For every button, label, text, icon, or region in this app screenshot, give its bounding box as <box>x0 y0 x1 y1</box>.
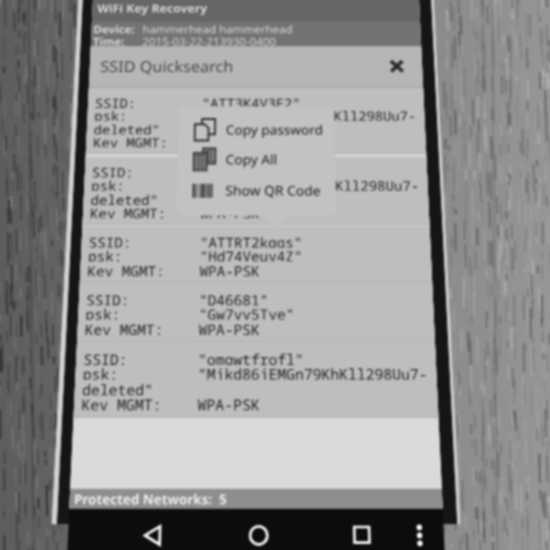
button[interactable]: SSID: <box>73 342 438 418</box>
staticText: deleted" <box>93 121 161 135</box>
staticText: WPA-PSK <box>197 394 260 410</box>
button[interactable]: WiFi Key Recovery <box>92 0 420 22</box>
staticText: WiFi Key Recovery <box>97 0 208 16</box>
staticText: "Mjkd86jEMGn79KhKll298Uu7- <box>201 176 420 191</box>
staticText: "ATTRT2kqgs" <box>200 233 303 248</box>
staticText: "D46681" <box>199 290 269 305</box>
button[interactable]: Copy password <box>178 114 335 145</box>
staticText: SSID Quicksearch <box>100 56 234 76</box>
button[interactable]: Home <box>232 509 284 550</box>
staticText: deleted" <box>90 191 159 205</box>
button[interactable]: SSID: <box>77 283 435 342</box>
staticText: Key MGMT: <box>93 134 201 147</box>
staticText: "ATT3K4V3F2" <box>202 94 301 108</box>
button[interactable]: Recent apps <box>335 509 389 550</box>
button[interactable]: SSID Quicksearch <box>89 46 377 86</box>
staticText: "Gw7yy5Tye" <box>199 304 295 320</box>
button[interactable]: SSID: <box>86 88 426 154</box>
staticText: psk: <box>91 176 201 191</box>
button[interactable]: SSID: <box>82 157 429 225</box>
button[interactable]: Show QR Code <box>177 175 336 206</box>
staticText: Key MGMT: <box>87 261 200 276</box>
staticText: SSID: <box>95 94 202 108</box>
button[interactable]: SSID: <box>80 226 432 283</box>
button[interactable]: Back <box>126 509 179 550</box>
staticText: deleted" <box>82 380 154 395</box>
staticText: WPA-PSK <box>199 261 260 276</box>
staticText: SSID: <box>92 163 201 177</box>
staticText: WPA-PSK <box>200 204 260 218</box>
staticText: Copy All <box>226 150 278 168</box>
staticText: Key MGMT: <box>85 320 199 335</box>
staticText: psk: <box>88 247 200 261</box>
staticText: SSID: <box>86 290 199 305</box>
staticText: "Mjkd86jEMGn79KhKll298Uu7- <box>202 107 417 121</box>
staticText: Device: <box>93 22 143 34</box>
staticText: psk: <box>94 107 202 121</box>
staticText: "ATT3K4V3F2" <box>201 163 302 177</box>
button[interactable]: Clear search <box>376 52 418 81</box>
staticText: SSID: <box>83 349 198 365</box>
button[interactable]: Copy All <box>177 144 336 175</box>
staticText: "omgwtfrofl" <box>198 349 305 365</box>
staticText: WPA-PSK <box>201 134 260 147</box>
staticText: SSID: <box>88 233 200 248</box>
staticText: Protected Networks: 5 <box>74 490 227 509</box>
staticText: "Hd74Veuy4Z" <box>200 247 303 261</box>
staticText: Time: <box>93 34 142 46</box>
staticText: Copy password <box>226 121 323 138</box>
staticText: WPA-PSK <box>198 320 260 335</box>
staticText: Show QR Code <box>225 181 321 199</box>
button[interactable]: More options <box>402 512 436 550</box>
staticText: psk: <box>85 304 199 320</box>
staticText: Key MGMT: <box>90 204 200 218</box>
staticText: hammerhead hammerhead <box>142 22 293 34</box>
staticText: Key MGMT: <box>81 394 198 410</box>
staticText: 2015-03-22-213930-0400 <box>142 34 277 46</box>
staticText: "Mjkd86jEMGn79KhKll298Uu7- <box>198 364 428 380</box>
staticText: psk: <box>83 364 198 380</box>
